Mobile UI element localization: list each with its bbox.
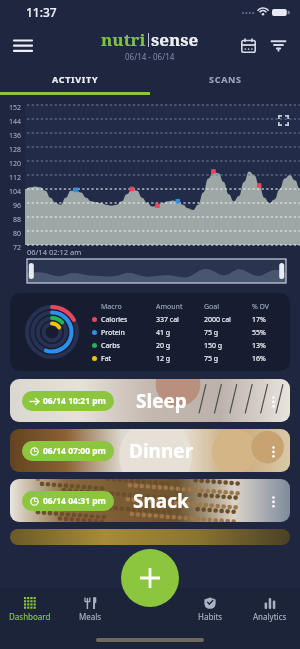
staticText: ACTIVITY: [52, 73, 99, 85]
staticText: Protein: [101, 328, 156, 338]
staticText: 55%: [252, 328, 286, 338]
staticText: 96: [13, 201, 22, 211]
staticText: Fat: [101, 354, 156, 364]
staticText: 75 g: [204, 328, 252, 338]
button[interactable]: Meals: [60, 588, 120, 631]
button[interactable]: Filter: [263, 30, 293, 60]
staticText: nutri: [101, 28, 146, 51]
staticText: 20 g: [156, 341, 204, 351]
button[interactable]: Dashboard: [0, 588, 60, 631]
button[interactable]: [27, 259, 286, 283]
staticText: Sleep: [136, 388, 187, 414]
button[interactable]: 06/14 10:21 pm: [10, 379, 290, 422]
staticText: 337 cal: [156, 315, 204, 325]
button[interactable]: 06/14 04:31 pm: [10, 479, 290, 522]
staticText: 75 g: [204, 354, 252, 364]
staticText: 136: [9, 131, 22, 141]
staticText: 17%: [252, 315, 286, 325]
button[interactable]: ACTIVITY: [0, 66, 150, 92]
button[interactable]: Menu: [7, 29, 39, 61]
button[interactable]: Analytics: [240, 588, 300, 631]
staticText: Amount: [156, 302, 204, 312]
staticText: 2000 cal: [204, 315, 252, 325]
staticText: 06/14 04:31 pm: [43, 495, 106, 507]
staticText: 13%: [252, 341, 286, 351]
staticText: Snack: [133, 488, 189, 514]
staticText: 16%: [252, 354, 286, 364]
staticText: 120: [9, 159, 22, 169]
button[interactable]: Fullscreen: [273, 110, 293, 130]
staticText: Dashboard: [9, 611, 51, 622]
button[interactable]: More options: [262, 390, 284, 412]
staticText: Analytics: [253, 611, 287, 622]
staticText: 104: [9, 187, 22, 197]
staticText: 11:37: [26, 4, 57, 20]
button[interactable]: Macro: [10, 293, 290, 371]
staticText: 06/14 - 06/14: [125, 51, 175, 62]
button[interactable]: Calendar: [233, 30, 263, 60]
staticText: 12 g: [156, 354, 204, 364]
staticText: Dinner: [129, 438, 194, 464]
staticText: 06/14 10:21 pm: [43, 395, 106, 407]
button[interactable]: [10, 529, 290, 545]
staticText: SCANS: [209, 73, 242, 85]
button[interactable]: Add entry: [121, 549, 179, 607]
staticText: Goal: [204, 302, 252, 312]
button[interactable]: nutri: [101, 28, 199, 62]
staticText: 144: [9, 117, 22, 127]
staticText: 112: [9, 173, 22, 183]
staticText: Macro: [101, 302, 156, 312]
staticText: 128: [9, 145, 22, 155]
staticText: % DV: [252, 302, 286, 312]
staticText: Habits: [198, 611, 223, 622]
staticText: 06/14 02:12 am: [27, 247, 82, 257]
staticText: 88: [13, 215, 22, 225]
button[interactable]: SCANS: [150, 66, 300, 92]
staticText: 06/14 07:00 pm: [43, 445, 106, 457]
button[interactable]: More options: [262, 490, 284, 512]
staticText: 80: [13, 229, 22, 239]
staticText: Calories: [101, 315, 156, 325]
staticText: Meals: [79, 611, 102, 622]
staticText: Carbs: [101, 341, 156, 351]
button[interactable]: Habits: [180, 588, 240, 631]
staticText: sense: [151, 28, 199, 51]
button[interactable]: More options: [262, 440, 284, 462]
staticText: 41 g: [156, 328, 204, 338]
staticText: 150 g: [204, 341, 252, 351]
staticText: 72: [13, 243, 22, 253]
staticText: 152: [9, 103, 22, 113]
button[interactable]: 06/14 07:00 pm: [10, 429, 290, 472]
